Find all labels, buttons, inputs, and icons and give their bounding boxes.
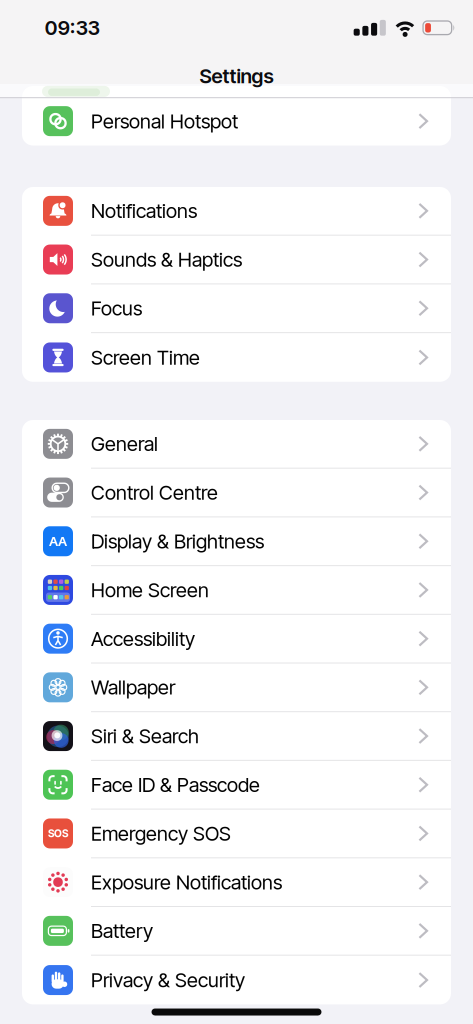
button[interactable]: General bbox=[22, 420, 451, 469]
staticText: Personal Hotspot bbox=[91, 109, 238, 133]
staticText: Notifications bbox=[91, 199, 197, 223]
button[interactable]: Siri & Search bbox=[22, 712, 451, 761]
button[interactable]: Notifications bbox=[22, 187, 451, 236]
staticText: SOS bbox=[48, 827, 68, 840]
staticText: Battery bbox=[91, 919, 153, 943]
staticText: General bbox=[91, 432, 158, 456]
staticText: Face ID & Passcode bbox=[91, 773, 260, 797]
button[interactable]: Control Centre bbox=[22, 469, 451, 517]
staticText: Focus bbox=[91, 296, 142, 320]
staticText: AA bbox=[49, 533, 67, 549]
staticText: Siri & Search bbox=[91, 724, 199, 748]
button[interactable]: Home Screen bbox=[22, 566, 451, 615]
button[interactable]: Focus bbox=[22, 284, 451, 333]
staticText: Wallpaper bbox=[91, 675, 175, 699]
button[interactable]: Accessibility bbox=[22, 615, 451, 663]
button[interactable]: Screen Time bbox=[22, 333, 451, 382]
button[interactable]: Sounds & Haptics bbox=[22, 236, 451, 284]
staticText: Privacy & Security bbox=[91, 968, 245, 992]
staticText: Control Centre bbox=[91, 480, 218, 504]
button[interactable]: Personal Hotspot bbox=[22, 97, 451, 145]
staticText: Screen Time bbox=[91, 345, 200, 369]
button[interactable]: Privacy & Security bbox=[22, 956, 451, 1004]
button[interactable]: Battery bbox=[22, 907, 451, 956]
staticText: Display & Brightness bbox=[91, 529, 264, 553]
button[interactable]: Exposure Notifications bbox=[22, 858, 451, 907]
staticText: Sounds & Haptics bbox=[91, 247, 242, 271]
staticText: Home Screen bbox=[91, 578, 209, 602]
button[interactable]: Wallpaper bbox=[22, 663, 451, 712]
staticText: Settings bbox=[199, 64, 273, 88]
staticText: 09:33 bbox=[45, 15, 100, 40]
button[interactable]: Face ID & Passcode bbox=[22, 761, 451, 810]
staticText: Emergency SOS bbox=[91, 821, 231, 845]
staticText: Accessibility bbox=[91, 627, 195, 651]
button[interactable]: SOS bbox=[22, 810, 451, 858]
button[interactable]: AA bbox=[22, 517, 451, 566]
staticText: Exposure Notifications bbox=[91, 870, 282, 894]
